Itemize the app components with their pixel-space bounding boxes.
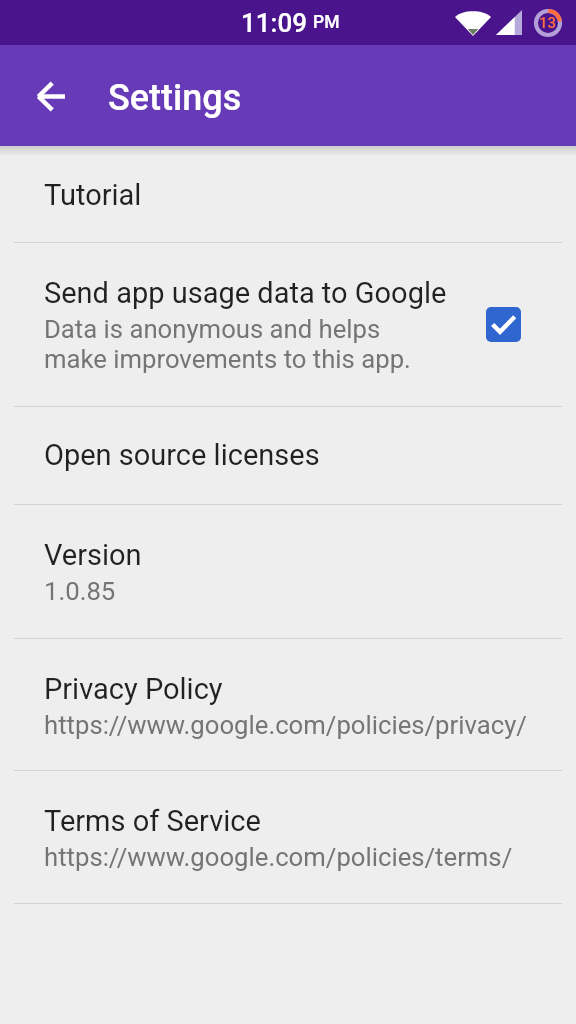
- button[interactable]: Privacy Policy: [0, 639, 576, 770]
- button[interactable]: Tutorial: [0, 156, 576, 242]
- staticText: Privacy Policy: [44, 672, 223, 706]
- staticText: PM: [313, 12, 340, 33]
- button[interactable]: Send app usage data to Google: [0, 243, 576, 406]
- staticText: 13: [539, 14, 557, 32]
- button[interactable]: Send app usage data to Google checkbox: [486, 307, 521, 342]
- staticText: Settings: [108, 77, 242, 119]
- staticText: Version: [44, 538, 142, 572]
- staticText: https://www.google.com/policies/terms/: [44, 842, 513, 872]
- button[interactable]: Version: [0, 505, 576, 638]
- staticText: 11:09: [241, 8, 307, 38]
- staticText: https://www.google.com/policies/privacy/: [44, 710, 527, 740]
- staticText: Open source licenses: [44, 438, 320, 472]
- button[interactable]: Open source licenses: [0, 407, 576, 504]
- staticText: 1.0.85: [44, 576, 116, 606]
- staticText: Terms of Service: [44, 804, 261, 838]
- staticText: Send app usage data to Google: [44, 276, 447, 310]
- button[interactable]: Back: [21, 67, 79, 125]
- staticText: Tutorial: [44, 178, 142, 212]
- staticText: Data is anonymous and helps make improve…: [44, 314, 411, 374]
- button[interactable]: Terms of Service: [0, 771, 576, 903]
